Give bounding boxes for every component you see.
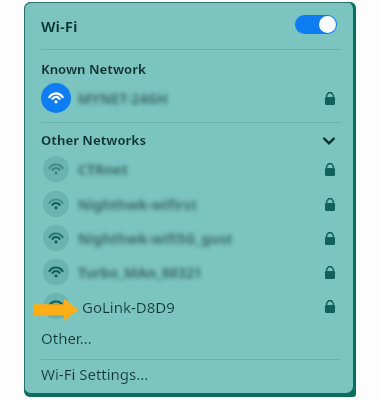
button[interactable]: Wi-Fi on/off [295,15,337,34]
button[interactable]: Known Network [25,54,353,84]
other: Secured network [324,299,336,313]
button[interactable]: Turbo_MAn_88321 [25,255,353,289]
staticText: Known Network [41,60,147,78]
other: Collapse Other Networks [323,137,335,145]
button[interactable]: Other... [25,321,353,355]
button[interactable]: CTRnet [25,152,353,186]
staticText: Wi-Fi Settings... [41,364,149,384]
staticText: Nighthwk-wifirst [78,195,197,214]
other: Secured network [324,91,336,105]
staticText: GoLink-D8D9 [82,297,175,317]
other: Secured network [324,231,336,245]
button[interactable]: Other Networks [25,125,353,155]
staticText: Turbo_MAn_88321 [78,263,202,282]
staticText: CTRnet [78,160,128,179]
staticText: Other Networks [41,131,146,149]
button[interactable]: Nighthwk-wifirst [25,187,353,221]
other: Secured network [324,162,336,176]
staticText: Other... [41,328,92,348]
other: Secured network [324,197,336,211]
button[interactable]: GoLink-D8D9 [25,289,353,323]
staticText: Nighthwk-wifi5G_gust [78,229,233,248]
button[interactable]: Wi-Fi Settings... [25,357,353,391]
staticText: Wi-Fi [41,16,78,36]
button[interactable]: Wi-Fi [25,3,353,49]
button[interactable]: MYNET-24GH [25,81,353,115]
other: Secured network [324,265,336,279]
button[interactable]: Nighthwk-wifi5G_gust [25,221,353,255]
staticText: MYNET-24GH [78,89,169,108]
